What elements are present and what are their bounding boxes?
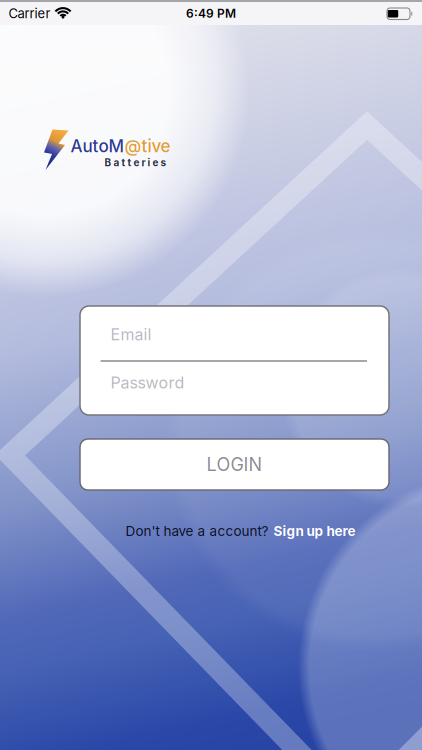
staticText: B a t t e r i e s: [104, 156, 166, 169]
button[interactable]: LOGIN: [80, 439, 389, 490]
staticText: Don't have a account?: [125, 523, 268, 539]
textField[interactable]: [101, 324, 368, 343]
staticText: Carrier: [8, 6, 50, 21]
staticText: 6:49 PM: [186, 6, 236, 21]
staticText: LOGIN: [206, 454, 262, 475]
textField[interactable]: [101, 378, 368, 398]
button[interactable]: Sign up here: [273, 523, 355, 539]
staticText: Email: [110, 325, 151, 344]
staticText: Sign up here: [273, 523, 355, 539]
staticText: Password: [110, 373, 184, 392]
staticText: @tive: [124, 136, 170, 156]
staticText: AutoM: [70, 136, 124, 156]
